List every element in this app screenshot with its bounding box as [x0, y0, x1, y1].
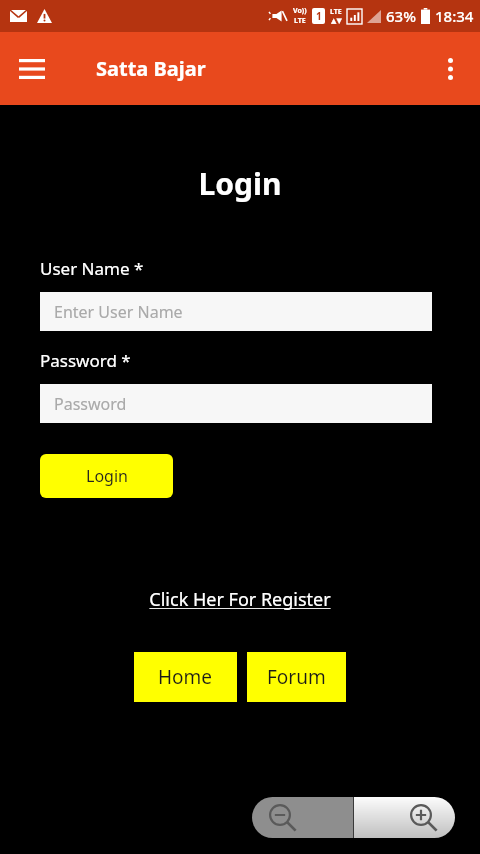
staticText: Login: [0, 163, 480, 204]
button[interactable]: Open navigation menu: [8, 45, 56, 93]
button[interactable]: Password: [40, 384, 432, 423]
staticText: Home: [158, 664, 213, 690]
staticText: 1: [316, 9, 322, 23]
staticText: Enter User Name: [54, 301, 183, 323]
button[interactable]: More options: [426, 45, 474, 93]
staticText: LTE: [330, 7, 342, 17]
staticText: User Name *: [40, 257, 144, 280]
button[interactable]: Home: [134, 652, 237, 702]
staticText: LTE: [294, 16, 306, 26]
staticText: Forum: [267, 664, 326, 690]
staticText: Login: [86, 465, 128, 487]
staticText: 63%: [386, 6, 416, 26]
button[interactable]: Forum: [247, 652, 346, 702]
button[interactable]: Zoom out: [252, 797, 353, 838]
staticText: 18:34: [435, 6, 474, 26]
staticText: Password *: [40, 349, 131, 372]
staticText: Click Her For Register: [149, 587, 331, 612]
staticText: Vo)): [293, 6, 307, 16]
button[interactable]: Enter User Name: [40, 292, 432, 331]
button[interactable]: Click Her For Register: [120, 587, 360, 612]
staticText: Satta Bajar: [96, 55, 206, 82]
staticText: Password: [54, 393, 127, 415]
button[interactable]: Login: [40, 454, 173, 498]
button[interactable]: Zoom in: [354, 797, 455, 838]
staticText: ▲▼: [331, 17, 342, 25]
